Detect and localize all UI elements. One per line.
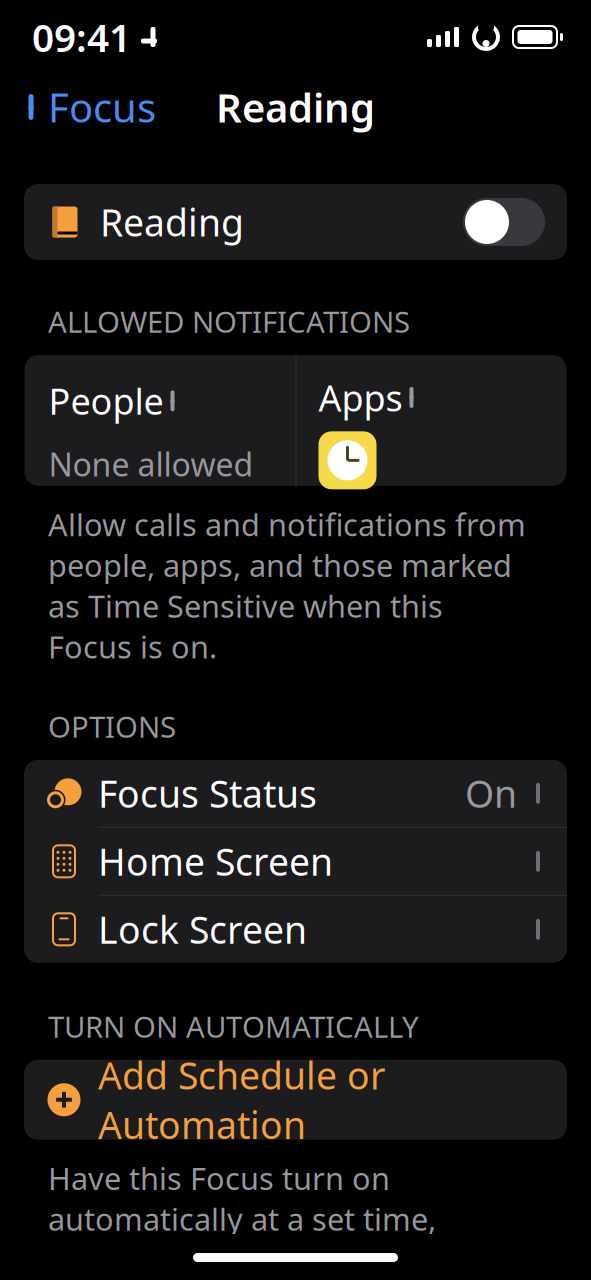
- button[interactable]: Focus: [6, 70, 172, 143]
- staticText: Lock Screen: [98, 904, 307, 954]
- button[interactable]: People: [24, 355, 295, 486]
- staticText: OPTIONS: [48, 707, 176, 746]
- staticText: TURN ON AUTOMATICALLY: [48, 1007, 419, 1046]
- staticText: Apps: [318, 374, 402, 421]
- staticText: Add Schedule or Automation: [98, 1050, 385, 1149]
- staticText: On: [465, 768, 517, 818]
- staticText: Allow calls and notifications from peopl…: [48, 504, 526, 667]
- button[interactable]: Home Screen: [24, 828, 567, 895]
- button[interactable]: Lock Screen: [24, 896, 567, 963]
- button[interactable]: Add Schedule or Automation: [24, 1060, 567, 1140]
- staticText: ALLOWED NOTIFICATIONS: [48, 302, 410, 341]
- staticText: 09:41: [32, 11, 131, 63]
- staticText: Focus Status: [98, 768, 317, 818]
- button[interactable]: Apps: [296, 355, 566, 486]
- staticText: People: [48, 377, 163, 425]
- staticText: Reading: [216, 80, 375, 133]
- staticText: None allowed: [48, 443, 253, 485]
- staticText: Reading: [100, 197, 244, 247]
- staticText: Home Screen: [98, 836, 333, 886]
- staticText: Focus: [48, 80, 156, 133]
- staticText: Have this Focus turn on automatically at…: [48, 1158, 517, 1280]
- button[interactable]: Reading Focus on or off: [463, 198, 545, 246]
- button[interactable]: Focus Status: [24, 760, 567, 827]
